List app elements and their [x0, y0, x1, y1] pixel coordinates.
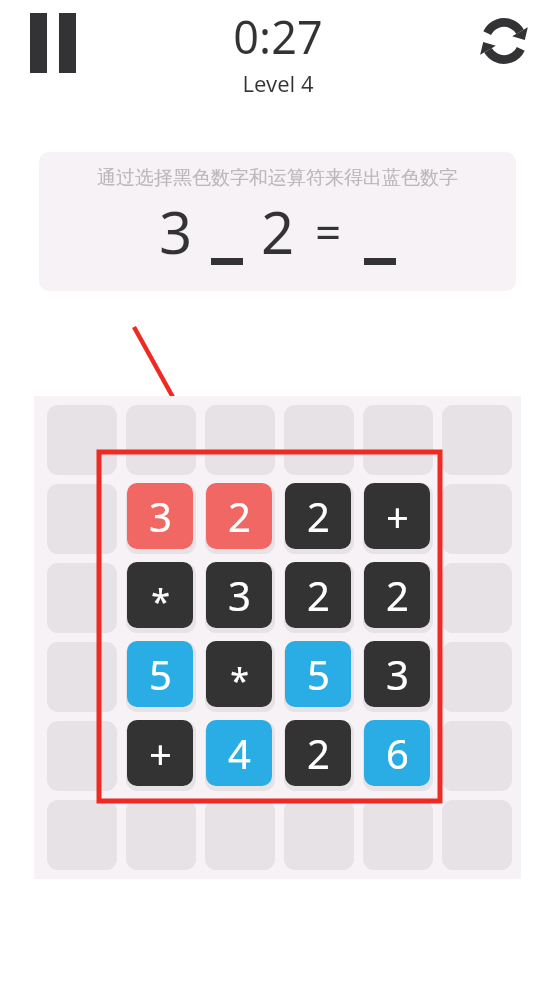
staticText: Level 4: [242, 68, 314, 98]
button[interactable]: 3: [206, 562, 272, 628]
staticText: +: [149, 726, 172, 780]
button[interactable]: +: [127, 720, 193, 786]
staticText: 2: [307, 726, 330, 780]
button[interactable]: 4: [206, 720, 272, 786]
staticText: =: [315, 200, 342, 263]
button[interactable]: 3: [364, 641, 430, 707]
button[interactable]: Pause: [22, 8, 84, 78]
button[interactable]: *: [206, 641, 272, 707]
staticText: *: [230, 657, 249, 703]
staticText: 4: [228, 726, 251, 780]
button[interactable]: 2: [285, 720, 351, 786]
staticText: 6: [386, 726, 409, 780]
staticText: 3: [386, 647, 409, 701]
staticText: 2: [228, 489, 251, 543]
staticText: 2: [386, 568, 409, 622]
button[interactable]: +: [364, 483, 430, 549]
staticText: 5: [149, 647, 172, 701]
button[interactable]: 2: [285, 483, 351, 549]
button[interactable]: 5: [127, 641, 193, 707]
staticText: 通过选择黑色数字和运算符来得出蓝色数字: [97, 166, 458, 190]
button[interactable]: 2: [206, 483, 272, 549]
staticText: 2: [261, 192, 295, 271]
staticText: *: [151, 578, 170, 624]
button[interactable]: Restart: [471, 8, 537, 74]
button[interactable]: 2: [364, 562, 430, 628]
button[interactable]: 2: [285, 562, 351, 628]
staticText: 2: [307, 489, 330, 543]
staticText: +: [386, 489, 409, 543]
staticText: 3: [228, 568, 251, 622]
staticText: 0:27: [233, 6, 323, 67]
staticText: 5: [307, 647, 330, 701]
staticText: 3: [159, 192, 193, 271]
staticText: 2: [307, 568, 330, 622]
button[interactable]: 5: [285, 641, 351, 707]
staticText: 3: [149, 489, 172, 543]
button[interactable]: *: [127, 562, 193, 628]
button[interactable]: 3: [127, 483, 193, 549]
button[interactable]: 6: [364, 720, 430, 786]
